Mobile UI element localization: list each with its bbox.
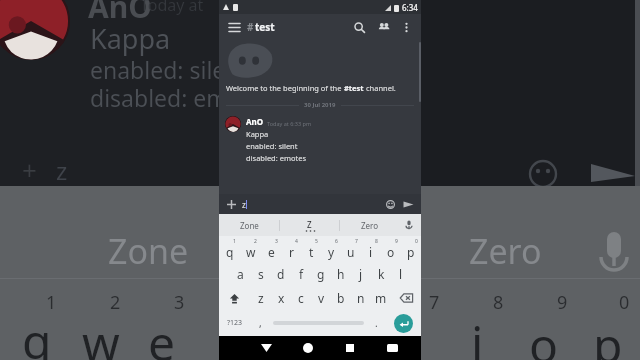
staticText: Kappa (90, 20, 171, 57)
staticText: z (242, 199, 246, 210)
button[interactable]: n (351, 286, 371, 310)
button[interactable]: c (291, 286, 311, 310)
button[interactable]: Back (245, 336, 287, 360)
staticText: x (278, 290, 285, 306)
button[interactable]: d (271, 262, 291, 286)
staticText: 2 (110, 290, 121, 315)
button[interactable]: f (291, 262, 311, 286)
staticText: g (317, 266, 325, 282)
staticText: 3 (275, 238, 278, 245)
staticText: f (299, 266, 304, 282)
staticText: 6 (335, 238, 338, 245)
button[interactable]: Shift (219, 286, 250, 310)
button[interactable]: 2 (240, 236, 261, 262)
staticText: c (298, 290, 304, 306)
staticText: 8 (375, 238, 378, 245)
staticText: q (22, 308, 52, 360)
staticText: 3 (174, 290, 185, 315)
staticText: Zero (469, 228, 542, 274)
staticText: o (529, 312, 559, 360)
button[interactable]: . (367, 310, 386, 336)
button[interactable]: Member list (374, 17, 394, 37)
button[interactable]: z (242, 199, 383, 210)
button[interactable]: 8 (361, 236, 381, 262)
button[interactable]: Emoji (383, 197, 397, 211)
button[interactable]: b (331, 286, 351, 310)
button[interactable]: m (371, 286, 391, 310)
staticText: z (258, 290, 264, 306)
button[interactable]: s (251, 262, 271, 286)
staticText: q (226, 244, 234, 260)
button[interactable]: Zone (219, 214, 279, 236)
button[interactable]: Backspace (391, 286, 421, 310)
button[interactable]: Voice input (399, 214, 419, 236)
staticText: e (268, 244, 275, 260)
staticText: y (328, 244, 335, 260)
button[interactable]: ?123 (219, 310, 251, 336)
staticText: 9 (395, 238, 398, 245)
button[interactable]: 6 (321, 236, 341, 262)
staticText: 7 (355, 238, 358, 245)
button[interactable]: , (251, 310, 270, 336)
staticText: 1 (46, 290, 57, 315)
staticText: # (247, 20, 254, 34)
staticText: u (347, 244, 355, 260)
staticText: disabled: emotes (246, 153, 307, 163)
staticText: n (357, 290, 365, 306)
staticText: 30 Jul 2019 (304, 101, 336, 109)
button[interactable]: j (351, 262, 371, 286)
button[interactable]: 1 (219, 236, 240, 262)
button[interactable]: Hide keyboard (371, 336, 413, 360)
staticText: channel. (364, 83, 396, 93)
staticText: t (309, 244, 314, 260)
button[interactable]: 4 (281, 236, 301, 262)
staticText: h (337, 266, 345, 282)
staticText: i (369, 244, 373, 260)
button[interactable]: x (271, 286, 291, 310)
staticText: 9 (557, 290, 568, 315)
staticText: 6:34 (402, 2, 418, 13)
button[interactable]: Home (287, 336, 329, 360)
button[interactable]: Z (280, 214, 339, 236)
button[interactable]: # (247, 20, 275, 34)
staticText: p (407, 244, 415, 260)
staticText: AnO (88, 0, 152, 27)
staticText: Zone (240, 220, 259, 231)
staticText: 4 (295, 238, 298, 245)
button[interactable]: h (331, 262, 351, 286)
button[interactable]: l (391, 262, 411, 286)
button[interactable]: Zero (340, 214, 399, 236)
staticText: AnO (246, 116, 264, 127)
button[interactable]: Add attachment (224, 197, 238, 211)
staticText: 0 (619, 290, 630, 315)
button[interactable]: g (311, 262, 331, 286)
button[interactable]: Search (349, 17, 369, 37)
staticText: l (399, 266, 403, 282)
staticText: Zone (108, 228, 189, 274)
button[interactable]: k (371, 262, 391, 286)
staticText: d (277, 266, 285, 282)
staticText: . (375, 316, 378, 330)
button[interactable]: Space (273, 318, 364, 328)
button[interactable]: z (250, 286, 271, 310)
button[interactable]: Enter (394, 314, 413, 333)
staticText: w (82, 310, 120, 360)
staticText: test (255, 20, 275, 34)
button[interactable]: a (230, 262, 251, 286)
button[interactable]: 9 (381, 236, 401, 262)
staticText: 8 (493, 290, 504, 315)
staticText: k (378, 266, 385, 282)
button[interactable]: Open navigation drawer (225, 18, 243, 36)
button[interactable]: More options (397, 18, 415, 36)
staticText: 1 (233, 238, 236, 245)
staticText: z (56, 154, 68, 187)
button[interactable]: 5 (301, 236, 321, 262)
button[interactable]: Recent apps (329, 336, 371, 360)
staticText: Zero (361, 220, 379, 231)
button[interactable]: 0 (401, 236, 421, 262)
button[interactable]: v (311, 286, 331, 310)
staticText: 7 (429, 290, 440, 315)
button[interactable]: Send message (401, 197, 416, 212)
button[interactable]: 7 (341, 236, 361, 262)
button[interactable]: 3 (261, 236, 281, 262)
